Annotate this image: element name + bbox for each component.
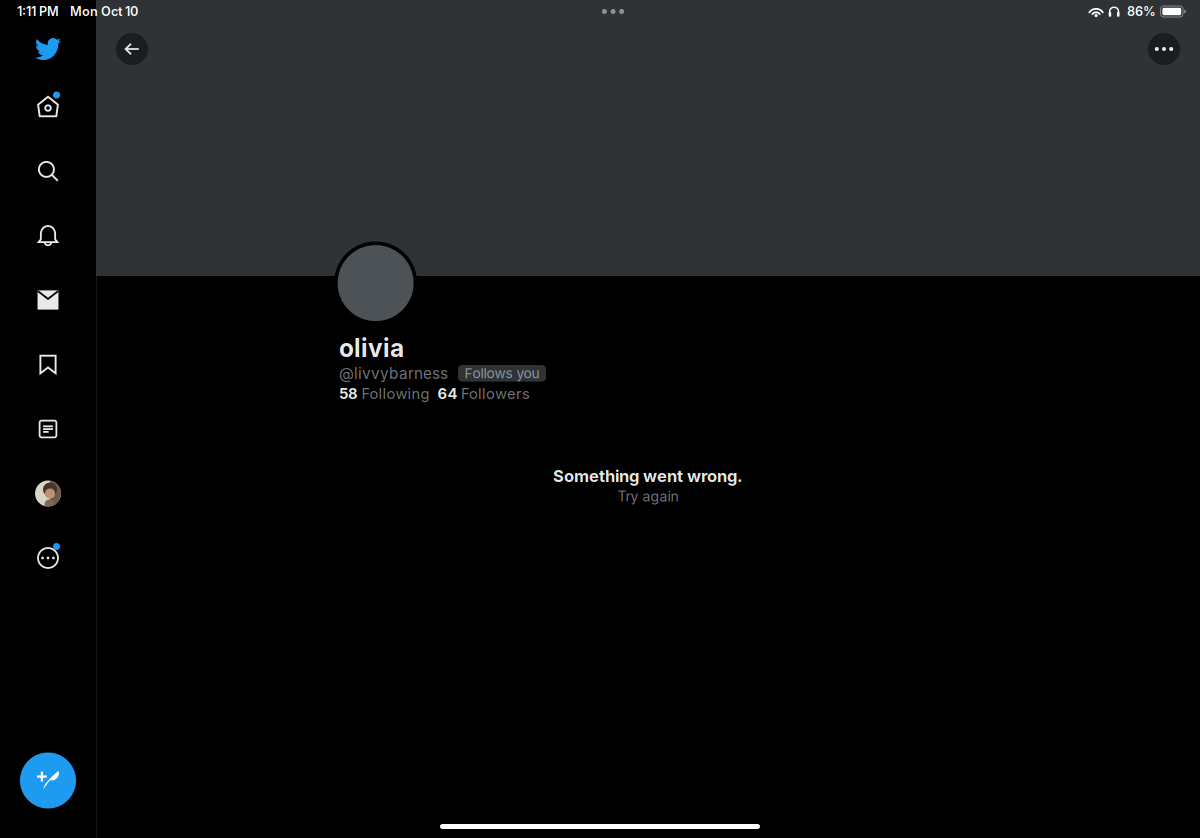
button[interactable]: Home	[0, 91, 96, 121]
staticText: olivia	[339, 333, 404, 363]
staticText: Follows you	[464, 365, 539, 382]
button[interactable]: Lists	[0, 414, 96, 444]
button[interactable]: Back	[116, 33, 148, 65]
button[interactable]: Search	[0, 156, 96, 186]
staticText: Followers	[461, 385, 530, 402]
staticText: Mon Oct 10	[70, 4, 138, 19]
button[interactable]: Messages	[0, 285, 96, 315]
button[interactable]: Profile	[0, 478, 96, 508]
staticText: @livvybarness	[339, 364, 448, 383]
staticText: Something went wrong.	[553, 466, 743, 486]
button[interactable]: Bookmarks	[0, 349, 96, 379]
staticText: Try again	[617, 488, 678, 505]
staticText: 86%	[1127, 4, 1156, 19]
button[interactable]: More	[0, 543, 96, 573]
button[interactable]: More options	[1148, 33, 1180, 65]
button[interactable]: Notifications	[0, 220, 96, 250]
staticText: 58	[339, 385, 358, 402]
staticText: Following	[361, 385, 429, 402]
button[interactable]: Compose Tweet	[0, 752, 96, 808]
button[interactable]: Twitter	[0, 34, 96, 64]
staticText: 1:11 PM	[17, 4, 59, 19]
staticText: 64	[437, 385, 457, 402]
